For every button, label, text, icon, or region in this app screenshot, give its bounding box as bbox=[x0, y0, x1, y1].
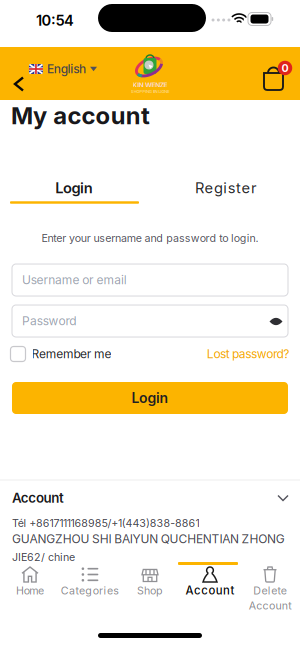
staticText: 10:54 bbox=[36, 12, 74, 29]
staticText: Delete bbox=[253, 584, 287, 597]
button[interactable]: Cart bbox=[253, 58, 291, 94]
staticText: 0 bbox=[281, 61, 288, 74]
staticText: SHOPPING EN LIGNE bbox=[131, 89, 169, 94]
staticText: Categories bbox=[61, 584, 119, 597]
button[interactable]: Username or email bbox=[12, 264, 288, 296]
button[interactable]: English bbox=[29, 62, 97, 76]
staticText: Account bbox=[12, 490, 64, 506]
button[interactable]: Login bbox=[12, 382, 288, 414]
staticText: Register bbox=[195, 179, 257, 197]
staticText: English bbox=[47, 62, 86, 76]
staticText: Remember me bbox=[31, 347, 111, 361]
staticText: Tél +8617111168985/+1(443)838-8861 bbox=[12, 516, 199, 529]
staticText: Login bbox=[55, 179, 93, 197]
staticText: My account bbox=[11, 101, 150, 130]
button[interactable]: Back bbox=[11, 73, 27, 94]
button[interactable]: Categories bbox=[60, 562, 120, 612]
staticText: Username or email bbox=[22, 273, 127, 287]
staticText: Enter your username and password to logi… bbox=[41, 231, 258, 244]
staticText: Password bbox=[22, 314, 76, 328]
button[interactable]: Account bbox=[180, 562, 240, 612]
staticText: Lost password? bbox=[207, 347, 289, 361]
button[interactable]: Login bbox=[9, 175, 139, 201]
staticText: KIN WENZE bbox=[133, 81, 167, 89]
staticText: Account bbox=[249, 599, 291, 612]
staticText: Login bbox=[132, 389, 168, 406]
staticText: Shop bbox=[137, 584, 163, 597]
button[interactable]: Lost password? bbox=[207, 347, 289, 361]
staticText: GUANGZHOU SHI BAIYUN QUCHENTIAN ZHONG bbox=[12, 532, 285, 546]
button[interactable]: Register bbox=[161, 175, 291, 201]
button[interactable]: Remember me bbox=[10, 346, 111, 361]
button[interactable]: Delete bbox=[240, 562, 300, 612]
staticText: Account bbox=[186, 584, 234, 597]
button[interactable]: Shop bbox=[120, 562, 180, 612]
staticText: Home bbox=[16, 584, 44, 597]
button[interactable]: Account bbox=[12, 488, 288, 508]
staticText: JIE62/ chine bbox=[12, 550, 75, 563]
button[interactable]: Password bbox=[12, 305, 288, 337]
button[interactable]: Home bbox=[0, 562, 60, 612]
